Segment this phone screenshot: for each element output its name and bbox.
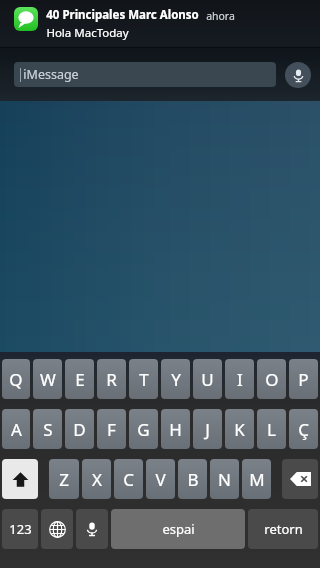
- button[interactable]: V: [146, 459, 175, 499]
- button[interactable]: Shift: [2, 459, 38, 499]
- button[interactable]: Dictation: [285, 62, 311, 88]
- button[interactable]: Q: [2, 359, 30, 399]
- button[interactable]: G: [129, 409, 158, 449]
- staticText: G: [137, 418, 150, 441]
- button[interactable]: Backspace: [282, 459, 318, 499]
- staticText: L: [267, 418, 276, 441]
- button[interactable]: F: [97, 409, 126, 449]
- staticText: C: [123, 468, 134, 491]
- button[interactable]: M: [242, 459, 271, 499]
- button[interactable]: J: [193, 409, 222, 449]
- button[interactable]: W: [33, 359, 62, 399]
- staticText: A: [11, 418, 22, 441]
- staticText: S: [43, 418, 53, 441]
- button[interactable]: C: [114, 459, 143, 499]
- button[interactable]: A: [2, 409, 30, 449]
- button[interactable]: O: [257, 359, 286, 399]
- button[interactable]: Change keyboard: [41, 509, 73, 549]
- staticText: O: [265, 368, 279, 391]
- button[interactable]: Y: [161, 359, 190, 399]
- button[interactable]: U: [193, 359, 222, 399]
- button[interactable]: N: [210, 459, 239, 499]
- button[interactable]: retorn: [248, 509, 318, 549]
- staticText: W: [40, 368, 56, 391]
- staticText: D: [73, 418, 86, 441]
- button[interactable]: Ç: [289, 409, 318, 449]
- button[interactable]: D: [65, 409, 94, 449]
- staticText: 40 Principales Marc Alonso: [46, 7, 199, 23]
- staticText: P: [298, 368, 309, 391]
- button[interactable]: espai: [111, 509, 245, 549]
- button[interactable]: Z: [49, 459, 79, 499]
- staticText: 123: [9, 520, 32, 538]
- staticText: E: [75, 368, 85, 391]
- staticText: Q: [9, 368, 23, 391]
- button[interactable]: S: [33, 409, 62, 449]
- staticText: Ç: [298, 418, 309, 441]
- staticText: V: [155, 468, 166, 491]
- button[interactable]: iMessage: [14, 62, 276, 87]
- staticText: Hola MacToday: [46, 25, 129, 41]
- staticText: J: [205, 418, 210, 441]
- button[interactable]: I: [225, 359, 254, 399]
- staticText: K: [234, 418, 245, 441]
- button[interactable]: B: [178, 459, 207, 499]
- button[interactable]: K: [225, 409, 254, 449]
- staticText: Y: [171, 368, 181, 391]
- staticText: B: [187, 468, 199, 491]
- button[interactable]: H: [161, 409, 190, 449]
- button[interactable]: Dictation: [76, 509, 108, 549]
- staticText: ahora: [206, 9, 235, 23]
- staticText: N: [218, 468, 231, 491]
- staticText: M: [249, 468, 265, 491]
- staticText: X: [92, 468, 102, 491]
- button[interactable]: T: [129, 359, 158, 399]
- button[interactable]: 123: [2, 509, 38, 549]
- staticText: U: [201, 368, 214, 391]
- staticText: T: [139, 368, 149, 391]
- staticText: R: [106, 368, 117, 391]
- button[interactable]: P: [289, 359, 318, 399]
- button[interactable]: X: [82, 459, 111, 499]
- staticText: H: [169, 418, 182, 441]
- button[interactable]: L: [257, 409, 286, 449]
- button[interactable]: Messages: [0, 0, 320, 47]
- other: Messages: [14, 7, 38, 31]
- staticText: iMessage: [23, 66, 79, 83]
- staticText: I: [237, 368, 243, 391]
- staticText: F: [107, 418, 116, 441]
- button[interactable]: R: [97, 359, 126, 399]
- staticText: espai: [162, 520, 195, 538]
- staticText: retorn: [264, 520, 303, 538]
- button[interactable]: E: [65, 359, 94, 399]
- staticText: Z: [59, 468, 69, 491]
